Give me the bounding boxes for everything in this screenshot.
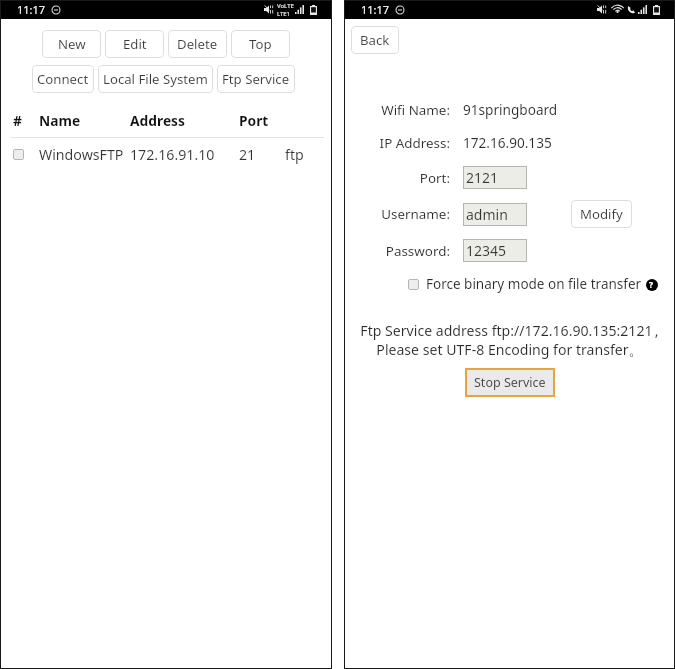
button[interactable]: admin [463,203,527,226]
staticText: Ftp Service [222,70,290,88]
button[interactable]: Delete [168,30,227,58]
button[interactable]: Local File System [98,65,213,93]
staticText: # [13,111,39,130]
button[interactable]: Checkbox [13,142,332,166]
staticText: 91springboard [463,100,558,119]
button[interactable]: New [42,30,101,58]
staticText: Modify [580,205,623,223]
staticText: LTE1 [277,10,291,18]
staticText: Port: [344,169,450,187]
button[interactable]: Edit [105,30,164,58]
button[interactable]: Help [645,278,658,291]
button[interactable]: 2121 [463,166,527,189]
button[interactable]: Ftp Service [217,65,295,93]
staticText: VoLTE [277,2,294,10]
staticText: Name [39,111,130,130]
staticText: Ftp Service address ftp://172.16.90.135:… [344,321,675,359]
staticText: ftp [285,145,304,164]
staticText: Username: [344,205,450,223]
button[interactable]: 12345 [463,239,527,262]
staticText: Connect [37,70,89,88]
button[interactable]: Checkbox [13,149,24,160]
button[interactable]: Stop Service [465,368,555,397]
staticText: Back [360,31,390,49]
staticText: Delete [177,35,218,53]
staticText: 12345 [466,241,507,260]
staticText: Local File System [103,70,208,88]
button[interactable]: Checkbox [408,279,419,290]
staticText: Password: [344,242,450,260]
staticText: Address [130,111,239,130]
staticText: admin [466,205,508,224]
staticText: 11:17 [361,2,390,17]
button[interactable]: Connect [32,65,94,93]
staticText: ? [649,279,654,291]
staticText: 172.16.91.10 [130,145,239,164]
staticText: IP Address: [344,134,450,152]
staticText: Force binary mode on file transfer [426,275,642,293]
staticText: Wifi Name: [344,101,450,119]
button[interactable]: Top [231,30,290,58]
staticText: 21 [239,145,285,164]
staticText: 11:17 [17,2,46,17]
staticText: 172.16.90.135 [463,133,552,152]
staticText: New [58,35,86,53]
staticText: Port [239,111,269,130]
staticText: 2121 [466,168,499,187]
staticText: Stop Service [474,374,546,391]
staticText: WindowsFTP [39,145,130,164]
staticText: Edit [123,35,147,53]
button[interactable]: Back [351,26,399,54]
staticText: Top [249,35,272,53]
button[interactable]: Modify [571,200,632,228]
